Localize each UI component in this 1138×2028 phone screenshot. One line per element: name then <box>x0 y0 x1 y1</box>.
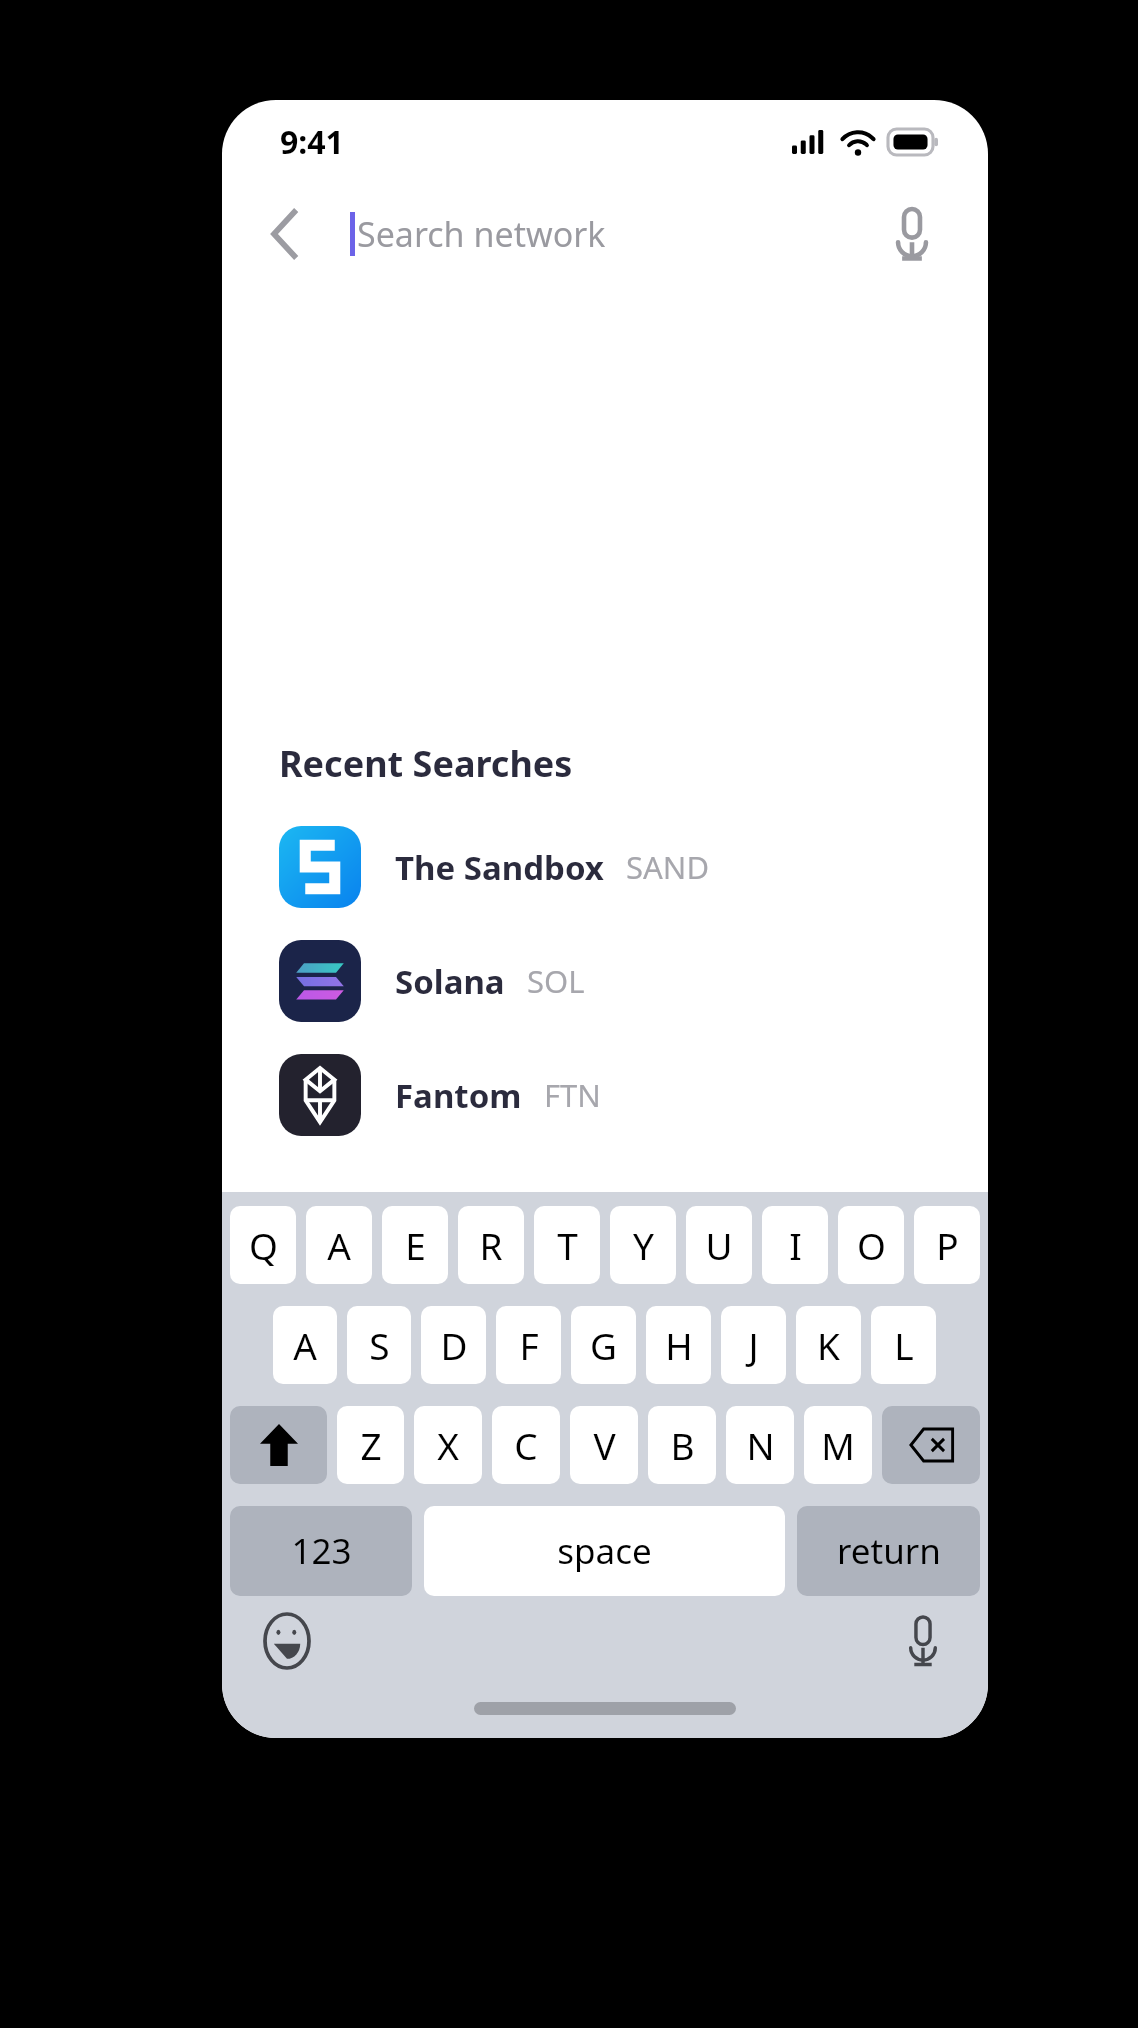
button[interactable]: Y <box>610 1206 676 1284</box>
staticText: Fantom <box>395 1073 522 1118</box>
staticText: X <box>437 1420 459 1470</box>
button[interactable]: X <box>414 1406 482 1484</box>
button[interactable]: The Sandbox <box>222 810 988 924</box>
staticText: O <box>857 1220 886 1270</box>
staticText: Z <box>360 1420 382 1470</box>
button[interactable]: L <box>871 1306 936 1384</box>
staticText: Q <box>249 1220 278 1270</box>
button[interactable]: K <box>796 1306 861 1384</box>
staticText: K <box>817 1320 840 1370</box>
button[interactable]: Dictation <box>894 1612 952 1670</box>
button[interactable]: Back <box>248 196 324 272</box>
staticText: 9:41 <box>280 120 344 164</box>
button[interactable]: Shift <box>230 1406 327 1484</box>
button[interactable]: N <box>726 1406 794 1484</box>
button[interactable]: Voice search <box>876 198 948 270</box>
button[interactable]: Backspace <box>882 1406 980 1484</box>
button[interactable]: D <box>421 1306 486 1384</box>
button[interactable]: P <box>914 1206 980 1284</box>
button[interactable]: H <box>646 1306 711 1384</box>
staticText: Y <box>633 1220 654 1270</box>
button[interactable]: Fantom <box>222 1038 988 1152</box>
button[interactable]: J <box>721 1306 786 1384</box>
button[interactable]: B <box>648 1406 716 1484</box>
button[interactable]: V <box>570 1406 638 1484</box>
staticText: SAND <box>626 846 710 888</box>
button[interactable]: S <box>347 1306 411 1384</box>
staticText: F <box>519 1320 539 1370</box>
button[interactable]: Q <box>230 1206 296 1284</box>
staticText: S <box>369 1320 390 1370</box>
staticText: N <box>746 1420 775 1470</box>
staticText: The Sandbox <box>395 845 604 890</box>
staticText: M <box>821 1420 855 1470</box>
staticText: G <box>590 1320 617 1370</box>
button[interactable]: C <box>492 1406 560 1484</box>
staticText: A <box>327 1220 351 1270</box>
button[interactable]: E <box>382 1206 448 1284</box>
button[interactable]: O <box>838 1206 904 1284</box>
button[interactable]: T <box>534 1206 600 1284</box>
staticText: A <box>293 1320 317 1370</box>
button[interactable]: space <box>424 1506 785 1596</box>
staticText: U <box>705 1220 733 1270</box>
staticText: T <box>557 1220 578 1270</box>
staticText: C <box>514 1420 538 1470</box>
staticText: V <box>593 1420 616 1470</box>
button[interactable]: Emoji <box>258 1612 316 1670</box>
staticText: return <box>837 1527 941 1575</box>
staticText: D <box>440 1320 468 1370</box>
staticText: E <box>405 1220 426 1270</box>
staticText: R <box>479 1220 503 1270</box>
staticText: I <box>789 1220 802 1270</box>
staticText: space <box>557 1527 652 1575</box>
button[interactable]: A <box>306 1206 372 1284</box>
button[interactable]: R <box>458 1206 524 1284</box>
button[interactable]: G <box>571 1306 636 1384</box>
button[interactable]: U <box>686 1206 752 1284</box>
staticText: P <box>936 1220 959 1270</box>
button[interactable]: I <box>762 1206 828 1284</box>
button[interactable]: Solana <box>222 924 988 1038</box>
button[interactable]: F <box>496 1306 561 1384</box>
staticText: Recent Searches <box>279 739 573 788</box>
staticText: B <box>670 1420 695 1470</box>
button[interactable]: A <box>273 1306 337 1384</box>
staticText: Solana <box>395 959 505 1004</box>
button[interactable]: M <box>804 1406 872 1484</box>
button[interactable]: return <box>797 1506 980 1596</box>
staticText: J <box>748 1320 759 1370</box>
staticText: Search network <box>357 211 606 257</box>
staticText: L <box>894 1320 914 1370</box>
button[interactable]: 123 <box>230 1506 412 1596</box>
staticText: SOL <box>527 960 585 1002</box>
staticText: FTN <box>544 1074 601 1116</box>
staticText: 123 <box>291 1527 352 1575</box>
button[interactable]: Z <box>337 1406 404 1484</box>
staticText: H <box>665 1320 693 1370</box>
